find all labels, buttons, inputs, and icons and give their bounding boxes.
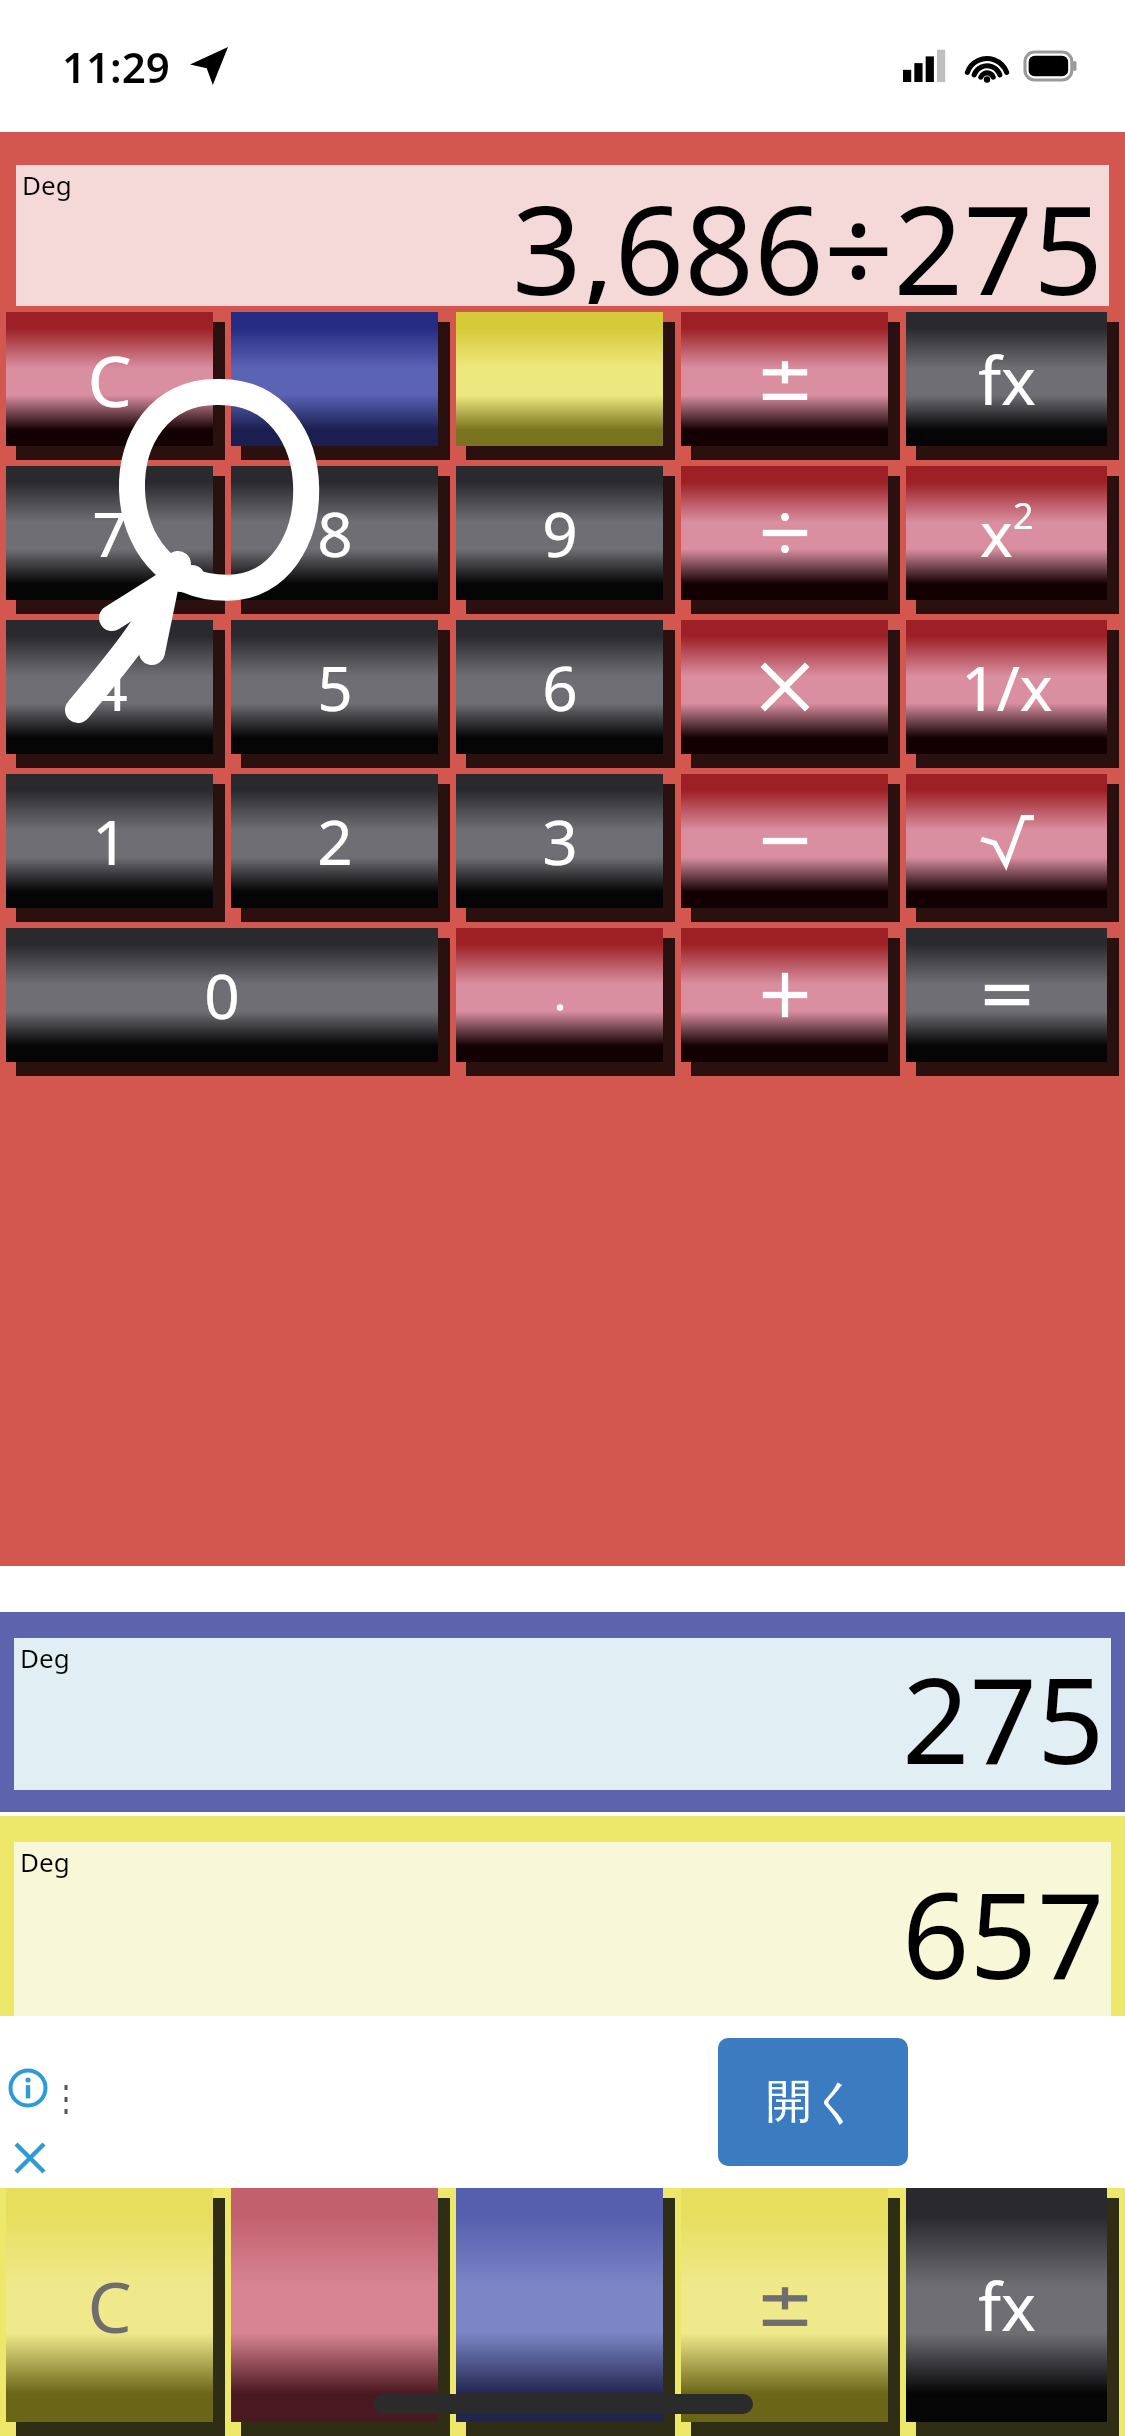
button[interactable] — [456, 2188, 675, 2436]
button[interactable]: 6 — [456, 620, 675, 768]
button[interactable]: 1/x — [906, 620, 1119, 768]
staticText: Deg — [22, 167, 72, 202]
button[interactable]: 2 — [231, 774, 450, 922]
button[interactable]: 4 — [6, 620, 225, 768]
button[interactable]: fx — [906, 312, 1119, 460]
button[interactable] — [681, 774, 900, 922]
staticText: 7 — [92, 491, 128, 575]
staticText: 1 — [92, 799, 128, 883]
button[interactable] — [906, 928, 1119, 1076]
button[interactable] — [456, 928, 675, 1076]
button[interactable] — [456, 312, 675, 460]
button[interactable]: 5 — [231, 620, 450, 768]
staticText: Deg — [20, 1640, 70, 1675]
staticText: Deg — [20, 1844, 70, 1879]
staticText: 6 — [542, 645, 578, 729]
staticText: 0 — [204, 953, 240, 1037]
staticText: 657 — [902, 1853, 1105, 2014]
button[interactable]: C — [6, 312, 225, 460]
button[interactable] — [231, 2188, 450, 2436]
staticText: C — [87, 2258, 132, 2353]
staticText: 開く — [766, 2073, 860, 2131]
staticText: fx — [978, 334, 1036, 424]
button[interactable] — [681, 620, 900, 768]
button[interactable]: 1 — [6, 774, 225, 922]
button[interactable]: C — [6, 2188, 225, 2436]
button[interactable] — [681, 312, 900, 460]
button[interactable] — [681, 466, 900, 614]
staticText: fx — [978, 2260, 1036, 2350]
button[interactable] — [681, 2188, 900, 2436]
staticText: 11:29 — [62, 38, 170, 95]
button[interactable]: Close ad — [10, 2138, 50, 2178]
button[interactable]: 開く — [718, 2038, 908, 2166]
button[interactable]: 9 — [456, 466, 675, 614]
button[interactable]: 3 — [456, 774, 675, 922]
staticText: 5 — [317, 645, 353, 729]
button[interactable]: 8 — [231, 466, 450, 614]
staticText: 4 — [92, 645, 128, 729]
staticText: 3,686÷275 — [512, 165, 1103, 304]
button[interactable]: Ad information — [8, 2068, 48, 2108]
button[interactable]: 0 — [6, 928, 450, 1076]
button[interactable] — [231, 312, 450, 460]
staticText: 2 — [1013, 491, 1034, 540]
staticText: 8 — [317, 491, 353, 575]
button[interactable] — [906, 774, 1119, 922]
staticText: x — [980, 491, 1013, 575]
staticText: 2 — [317, 799, 353, 883]
button[interactable]: 7 — [6, 466, 225, 614]
staticText: C — [87, 332, 132, 427]
button[interactable] — [681, 928, 900, 1076]
button[interactable]: fx — [906, 2188, 1119, 2436]
staticText: 3 — [542, 799, 578, 883]
staticText: 1/x — [961, 645, 1053, 729]
button[interactable]: x — [906, 466, 1119, 614]
staticText: 9 — [542, 491, 578, 575]
staticText: 275 — [902, 1638, 1105, 1788]
